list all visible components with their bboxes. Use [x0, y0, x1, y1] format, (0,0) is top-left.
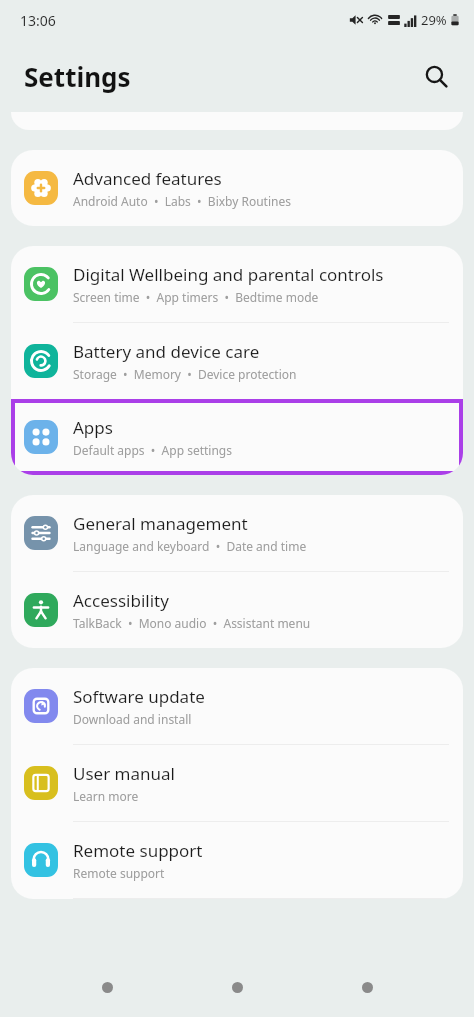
staticText: User manual [73, 762, 175, 785]
staticText: 13:06 [20, 11, 56, 30]
button[interactable]: General management [11, 495, 463, 571]
staticText: Battery and device care [73, 340, 260, 363]
button[interactable]: Recents [84, 964, 130, 1010]
staticText: Android Auto • Labs • Bixby Routines [73, 193, 291, 209]
button[interactable]: Software update [11, 668, 463, 744]
staticText: Advanced features [73, 167, 222, 190]
button[interactable]: Apps [11, 399, 463, 475]
staticText: Language and keyboard • Date and time [73, 538, 307, 554]
staticText: Remote support [73, 865, 165, 881]
button[interactable]: Remote support [11, 822, 463, 898]
button[interactable]: Back [344, 964, 390, 1010]
staticText: TalkBack • Mono audio • Assistant menu [73, 615, 311, 631]
button[interactable]: Digital Wellbeing and parental controls [11, 246, 463, 322]
staticText: Screen time • App timers • Bedtime mode [73, 289, 319, 305]
staticText: 29% [421, 11, 447, 29]
button[interactable]: Battery and device care [11, 323, 463, 399]
staticText: Storage • Memory • Device protection [73, 366, 297, 382]
staticText: Digital Wellbeing and parental controls [73, 263, 384, 286]
staticText: Accessibility [73, 589, 169, 612]
button[interactable]: User manual [11, 745, 463, 821]
staticText: General management [73, 512, 248, 535]
staticText: Remote support [73, 839, 203, 862]
button[interactable]: Advanced features [11, 150, 463, 226]
button[interactable]: Home [214, 964, 260, 1010]
staticText: Default apps • App settings [73, 442, 232, 458]
staticText: Apps [73, 416, 113, 439]
button[interactable]: Search [415, 55, 457, 97]
staticText: Software update [73, 685, 205, 708]
button[interactable]: Accessibility [11, 572, 463, 648]
staticText: Learn more [73, 788, 139, 804]
staticText: Download and install [73, 711, 192, 727]
staticText: Settings [24, 59, 131, 94]
